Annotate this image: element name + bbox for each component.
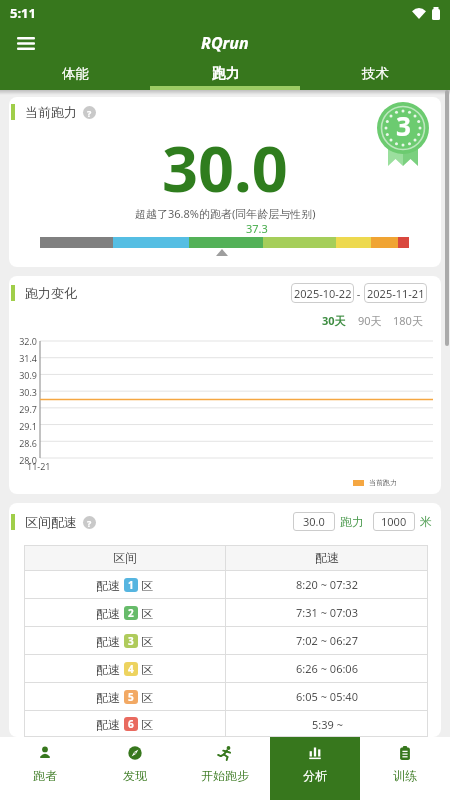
button[interactable]: 技术 — [300, 60, 450, 90]
staticText: 配速 — [96, 661, 124, 677]
staticText: 29.7 — [9, 403, 37, 415]
staticText: 4 — [128, 662, 134, 676]
button[interactable]: 跑力 — [150, 60, 300, 90]
staticText: 跑力 — [340, 514, 364, 529]
staticText: 配速 — [96, 633, 124, 649]
button[interactable]: 开始跑步 — [180, 737, 270, 800]
staticText: 5:39 ~ — [312, 717, 343, 732]
button[interactable]: 2025-11-21 — [364, 283, 427, 303]
staticText: 区 — [138, 577, 154, 593]
staticText: 37.3 — [246, 221, 268, 236]
button[interactable]: 分析 — [270, 737, 360, 800]
button[interactable]: 体能 — [0, 60, 150, 90]
staticText: 配速 — [96, 605, 124, 621]
staticText: ? — [87, 107, 92, 119]
staticText: 1 — [128, 578, 134, 592]
staticText: 开始跑步 — [201, 768, 249, 783]
staticText: 体能 — [62, 65, 89, 82]
staticText: ? — [87, 517, 92, 529]
staticText: 配速 — [315, 550, 339, 565]
staticText: 30.3 — [9, 386, 37, 398]
staticText: 区间 — [113, 550, 137, 565]
button[interactable]: ? — [83, 106, 96, 119]
staticText: 7:02 ~ 06:27 — [296, 633, 358, 648]
staticText: 超越了36.8%的跑者(同年龄层与性别) — [135, 206, 316, 221]
staticText: 7:31 ~ 07:03 — [296, 605, 358, 620]
staticText: 28.6 — [9, 437, 37, 449]
staticText: 6 — [128, 717, 134, 731]
staticText: 米 — [420, 514, 432, 529]
staticText: 配速 — [96, 716, 124, 732]
staticText: 区 — [138, 716, 154, 732]
staticText: 1000 — [381, 514, 407, 529]
staticText: 3 — [396, 108, 411, 143]
staticText: 2025-10-22 — [294, 286, 352, 301]
button[interactable]: 30.0 — [293, 512, 335, 531]
staticText: 8:20 ~ 07:32 — [296, 577, 358, 592]
button[interactable] — [17, 37, 35, 50]
staticText: RQrun — [201, 32, 249, 54]
staticText: 区 — [138, 689, 154, 705]
button[interactable]: 跑者 — [0, 737, 90, 800]
button[interactable]: 1000 — [373, 512, 415, 531]
staticText: 区 — [138, 633, 154, 649]
staticText: 跑力变化 — [25, 285, 77, 301]
button[interactable]: 30天 — [322, 313, 346, 328]
staticText: - — [354, 286, 364, 301]
staticText: 32.0 — [9, 335, 37, 347]
staticText: 30.0 — [303, 514, 325, 529]
staticText: 训练 — [393, 768, 417, 783]
staticText: 分析 — [303, 768, 327, 783]
button[interactable]: 训练 — [360, 737, 450, 800]
button[interactable]: 90天 — [358, 313, 382, 328]
staticText: 6:05 ~ 05:40 — [296, 689, 358, 704]
staticText: 技术 — [362, 65, 389, 82]
button[interactable]: 180天 — [393, 313, 423, 328]
staticText: 6:26 ~ 06:06 — [296, 661, 358, 676]
staticText: 31.4 — [9, 352, 37, 364]
staticText: 区 — [138, 661, 154, 677]
staticText: 3 — [128, 634, 134, 648]
staticText: 区间配速 — [25, 514, 77, 530]
staticText: 跑力 — [212, 65, 239, 82]
staticText: 当前跑力 — [25, 104, 77, 120]
staticText: 配速 — [96, 577, 124, 593]
staticText: 30.0 — [162, 125, 288, 211]
staticText: 发现 — [123, 768, 147, 783]
button[interactable]: 发现 — [90, 737, 180, 800]
staticText: 2025-11-21 — [367, 286, 425, 301]
button[interactable]: ? — [83, 516, 96, 529]
staticText: 28.0 — [9, 454, 37, 466]
staticText: 跑者 — [33, 768, 57, 783]
staticText: 30.9 — [9, 369, 37, 381]
staticText: 5:11 — [10, 4, 36, 22]
staticText: 区 — [138, 605, 154, 621]
staticText: 配速 — [96, 689, 124, 705]
staticText: 5 — [128, 690, 134, 704]
staticText: 11-21 — [27, 460, 51, 472]
staticText: 当前跑力 — [369, 478, 397, 487]
staticText: 29.1 — [9, 420, 37, 432]
button[interactable]: 2025-10-22 — [291, 283, 354, 303]
staticText: 2 — [128, 606, 134, 620]
